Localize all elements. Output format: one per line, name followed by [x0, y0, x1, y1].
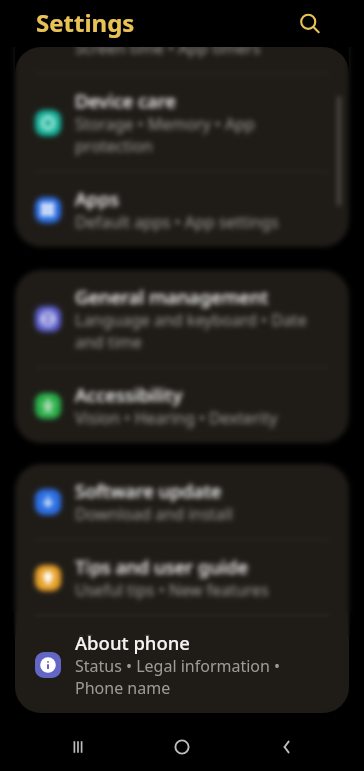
- button[interactable]: Software update: [15, 464, 349, 539]
- button[interactable]: Apps: [15, 172, 349, 247]
- button[interactable]: Accessibility: [15, 368, 349, 443]
- button[interactable]: Digital Wellbeing: [15, 0, 349, 73]
- button[interactable]: Tips and user guide: [15, 540, 349, 615]
- button[interactable]: Device care: [15, 74, 349, 171]
- button[interactable]: Device care: [15, 74, 349, 171]
- button[interactable]: Software update: [15, 464, 349, 539]
- button[interactable]: Digital Wellbeing: [15, 0, 349, 73]
- button[interactable]: Apps: [15, 172, 349, 247]
- button[interactable]: Device care: [15, 74, 349, 171]
- button[interactable]: Device care: [15, 74, 349, 171]
- button[interactable]: About phone: [15, 616, 349, 713]
- button[interactable]: About phone: [15, 616, 349, 713]
- button[interactable]: Digital Wellbeing: [15, 0, 349, 73]
- button[interactable]: Device care: [15, 74, 349, 171]
- button[interactable]: About phone: [15, 616, 349, 713]
- button[interactable]: Apps: [15, 172, 349, 247]
- button[interactable]: Accessibility: [15, 368, 349, 443]
- button[interactable]: Software update: [15, 464, 349, 539]
- button[interactable]: Tips and user guide: [15, 540, 349, 615]
- button[interactable]: Tips and user guide: [15, 540, 349, 615]
- button[interactable]: Apps: [15, 172, 349, 247]
- button[interactable]: Accessibility: [15, 368, 349, 443]
- button[interactable]: About phone: [15, 616, 349, 713]
- button[interactable]: Accessibility: [15, 368, 349, 443]
- button[interactable]: About phone: [15, 616, 349, 713]
- button[interactable]: Accessibility: [15, 368, 349, 443]
- button[interactable]: About phone: [15, 616, 349, 713]
- button[interactable]: Device care: [15, 74, 349, 171]
- button[interactable]: Accessibility: [15, 368, 349, 443]
- button[interactable]: Apps: [15, 172, 349, 247]
- button[interactable]: General management: [15, 270, 349, 367]
- button[interactable]: Apps: [15, 172, 349, 247]
- button[interactable]: Apps: [15, 172, 349, 247]
- button[interactable]: About phone: [15, 616, 349, 713]
- button[interactable]: About phone: [15, 616, 349, 713]
- button[interactable]: Accessibility: [15, 368, 349, 443]
- button[interactable]: About phone: [15, 616, 349, 713]
- button[interactable]: Digital Wellbeing: [15, 0, 349, 73]
- button[interactable]: Apps: [15, 172, 349, 247]
- button[interactable]: Software update: [15, 464, 349, 539]
- button[interactable]: General management: [15, 270, 349, 367]
- button[interactable]: General management: [15, 270, 349, 367]
- button[interactable]: Tips and user guide: [15, 540, 349, 615]
- button[interactable]: About phone: [15, 616, 349, 713]
- button[interactable]: Accessibility: [15, 368, 349, 443]
- button[interactable]: Software update: [15, 464, 349, 539]
- button[interactable]: Tips and user guide: [15, 540, 349, 615]
- button[interactable]: Tips and user guide: [15, 540, 349, 615]
- button[interactable]: Digital Wellbeing: [15, 0, 349, 73]
- button[interactable]: General management: [15, 270, 349, 367]
- button[interactable]: Device care: [15, 74, 349, 171]
- button[interactable]: Tips and user guide: [15, 540, 349, 615]
- button[interactable]: Accessibility: [15, 368, 349, 443]
- button[interactable]: Apps: [15, 172, 349, 247]
- button[interactable]: Digital Wellbeing: [15, 0, 349, 73]
- button[interactable]: About phone: [15, 616, 349, 713]
- button[interactable]: General management: [15, 270, 349, 367]
- button[interactable]: Digital Wellbeing: [15, 0, 349, 73]
- button[interactable]: General management: [15, 270, 349, 367]
- button[interactable]: Tips and user guide: [15, 540, 349, 615]
- button[interactable]: General management: [15, 270, 349, 367]
- button[interactable]: Tips and user guide: [15, 540, 349, 615]
- button[interactable]: Software update: [15, 464, 349, 539]
- button[interactable]: About phone: [15, 616, 349, 713]
- button[interactable]: Tips and user guide: [15, 540, 349, 615]
- button[interactable]: Device care: [15, 74, 349, 171]
- button[interactable]: Accessibility: [15, 368, 349, 443]
- button[interactable]: Software update: [15, 464, 349, 539]
- button[interactable]: Accessibility: [15, 368, 349, 443]
- button[interactable]: Software update: [15, 464, 349, 539]
- button[interactable]: About phone: [15, 616, 349, 713]
- button[interactable]: Device care: [15, 74, 349, 171]
- button[interactable]: Device care: [15, 74, 349, 171]
- button[interactable]: Accessibility: [15, 368, 349, 443]
- button[interactable]: Apps: [15, 172, 349, 247]
- button[interactable]: General management: [15, 270, 349, 367]
- button[interactable]: Apps: [15, 172, 349, 247]
- button[interactable]: Device care: [15, 74, 349, 171]
- button[interactable]: Software update: [15, 464, 349, 539]
- button[interactable]: Device care: [15, 74, 349, 171]
- button[interactable]: Apps: [15, 172, 349, 247]
- button[interactable]: Software update: [15, 464, 349, 539]
- button[interactable]: Device care: [15, 74, 349, 171]
- button[interactable]: Software update: [15, 464, 349, 539]
- button[interactable]: Digital Wellbeing: [15, 0, 349, 73]
- button[interactable]: Software update: [15, 464, 349, 539]
- button[interactable]: Back: [260, 723, 314, 771]
- button[interactable]: Device care: [15, 74, 349, 171]
- button[interactable]: Software update: [15, 464, 349, 539]
- button[interactable]: Software update: [15, 464, 349, 539]
- button[interactable]: Device care: [15, 74, 349, 171]
- button[interactable]: Software update: [15, 464, 349, 539]
- button[interactable]: Accessibility: [15, 368, 349, 443]
- button[interactable]: About phone: [15, 616, 349, 713]
- button[interactable]: Software update: [15, 464, 349, 539]
- button[interactable]: Apps: [15, 172, 349, 247]
- button[interactable]: General management: [15, 270, 349, 367]
- button[interactable]: Software update: [15, 464, 349, 539]
